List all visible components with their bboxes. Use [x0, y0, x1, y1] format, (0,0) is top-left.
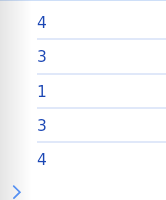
button[interactable]: 4	[0, 141, 166, 175]
button[interactable]: 3	[0, 38, 166, 72]
button[interactable]: 3	[0, 107, 166, 141]
button[interactable]: 1	[0, 73, 166, 107]
staticText: 4	[37, 14, 47, 32]
staticText: 3	[37, 117, 47, 135]
staticText: 1	[37, 83, 47, 101]
button[interactable]: Expand	[6, 180, 26, 200]
button[interactable]: 4	[0, 4, 166, 38]
staticText: 3	[37, 48, 47, 66]
staticText: 4	[37, 151, 47, 169]
